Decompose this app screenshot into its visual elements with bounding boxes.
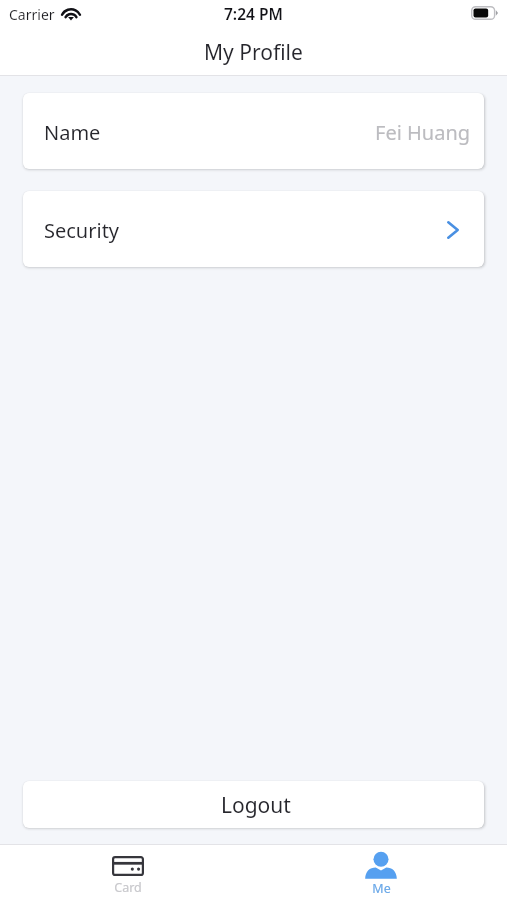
staticText: Name <box>44 119 101 146</box>
staticText: My Profile <box>204 38 303 67</box>
staticText: Me <box>372 880 391 897</box>
button[interactable]: Card <box>0 845 253 900</box>
other: Card <box>112 856 144 876</box>
staticText: Card <box>114 879 142 896</box>
staticText: Security <box>44 217 120 244</box>
button[interactable]: Security <box>23 191 484 267</box>
other: Me <box>365 852 397 879</box>
staticText: Carrier <box>9 5 55 24</box>
button[interactable]: Name <box>23 93 484 169</box>
staticText: Logout <box>221 791 291 820</box>
button[interactable]: Logout <box>23 781 484 828</box>
button[interactable]: Me <box>253 845 507 900</box>
staticText: 7:24 PM <box>224 3 283 24</box>
staticText: Fei Huang <box>375 119 471 146</box>
